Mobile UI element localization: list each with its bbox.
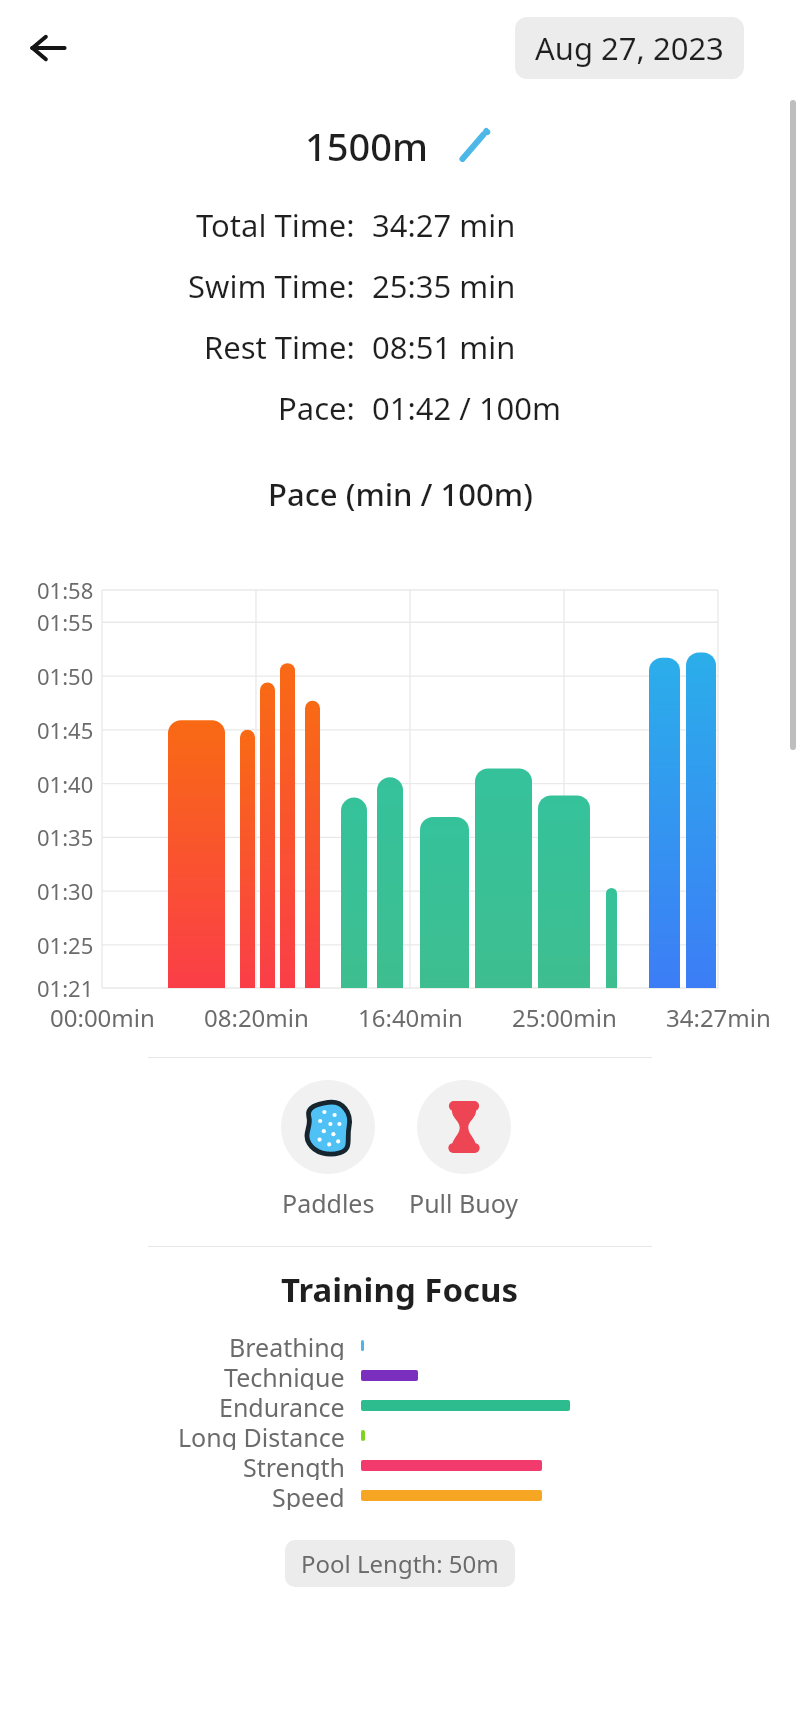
staticText: Strength: [243, 1450, 345, 1480]
staticText: 1500m: [305, 120, 428, 172]
staticText: 08:20min: [204, 1001, 309, 1034]
staticText: Paddles: [282, 1186, 375, 1220]
staticText: Endurance: [219, 1390, 345, 1420]
staticText: 01:42 / 100m: [372, 387, 562, 429]
staticText: Long Distance: [178, 1420, 345, 1450]
staticText: 25:35 min: [372, 265, 516, 307]
button[interactable]: Back: [16, 16, 80, 80]
staticText: 08:51 min: [372, 326, 516, 368]
staticText: 01:50: [37, 661, 94, 691]
staticText: 01:40: [37, 769, 94, 799]
staticText: 01:35: [37, 822, 94, 852]
staticText: Breathing: [229, 1330, 345, 1360]
button[interactable]: Pull Buoy: [405, 1080, 523, 1220]
staticText: 16:40min: [358, 1001, 463, 1034]
staticText: 25:00min: [512, 1001, 617, 1034]
staticText: Aug 27, 2023: [535, 27, 724, 69]
button[interactable]: Paddles: [277, 1080, 379, 1220]
staticText: Swim Time:: [188, 265, 355, 307]
staticText: Total Time:: [196, 204, 355, 246]
staticText: 34:27 min: [372, 204, 516, 246]
staticText: Technique: [224, 1360, 345, 1390]
button[interactable]: Aug 27, 2023: [515, 17, 744, 79]
staticText: 01:30: [37, 876, 94, 906]
staticText: 01:55: [37, 607, 94, 637]
staticText: Pace:: [278, 387, 355, 429]
staticText: Speed: [272, 1480, 345, 1510]
staticText: Training Focus: [281, 1267, 519, 1312]
staticText: Pace (min / 100m): [268, 473, 533, 515]
staticText: 01:45: [37, 715, 94, 745]
button[interactable]: Edit: [452, 124, 496, 168]
button[interactable]: Pool Length: 50m: [285, 1540, 515, 1587]
staticText: Pool Length: 50m: [301, 1547, 499, 1580]
staticText: 34:27min: [666, 1001, 771, 1034]
staticText: 00:00min: [50, 1001, 155, 1034]
staticText: 01:25: [37, 930, 94, 960]
staticText: Pull Buoy: [409, 1186, 519, 1220]
staticText: Rest Time:: [204, 326, 355, 368]
staticText: 01:21: [37, 973, 94, 1003]
staticText: 01:58: [37, 575, 94, 605]
